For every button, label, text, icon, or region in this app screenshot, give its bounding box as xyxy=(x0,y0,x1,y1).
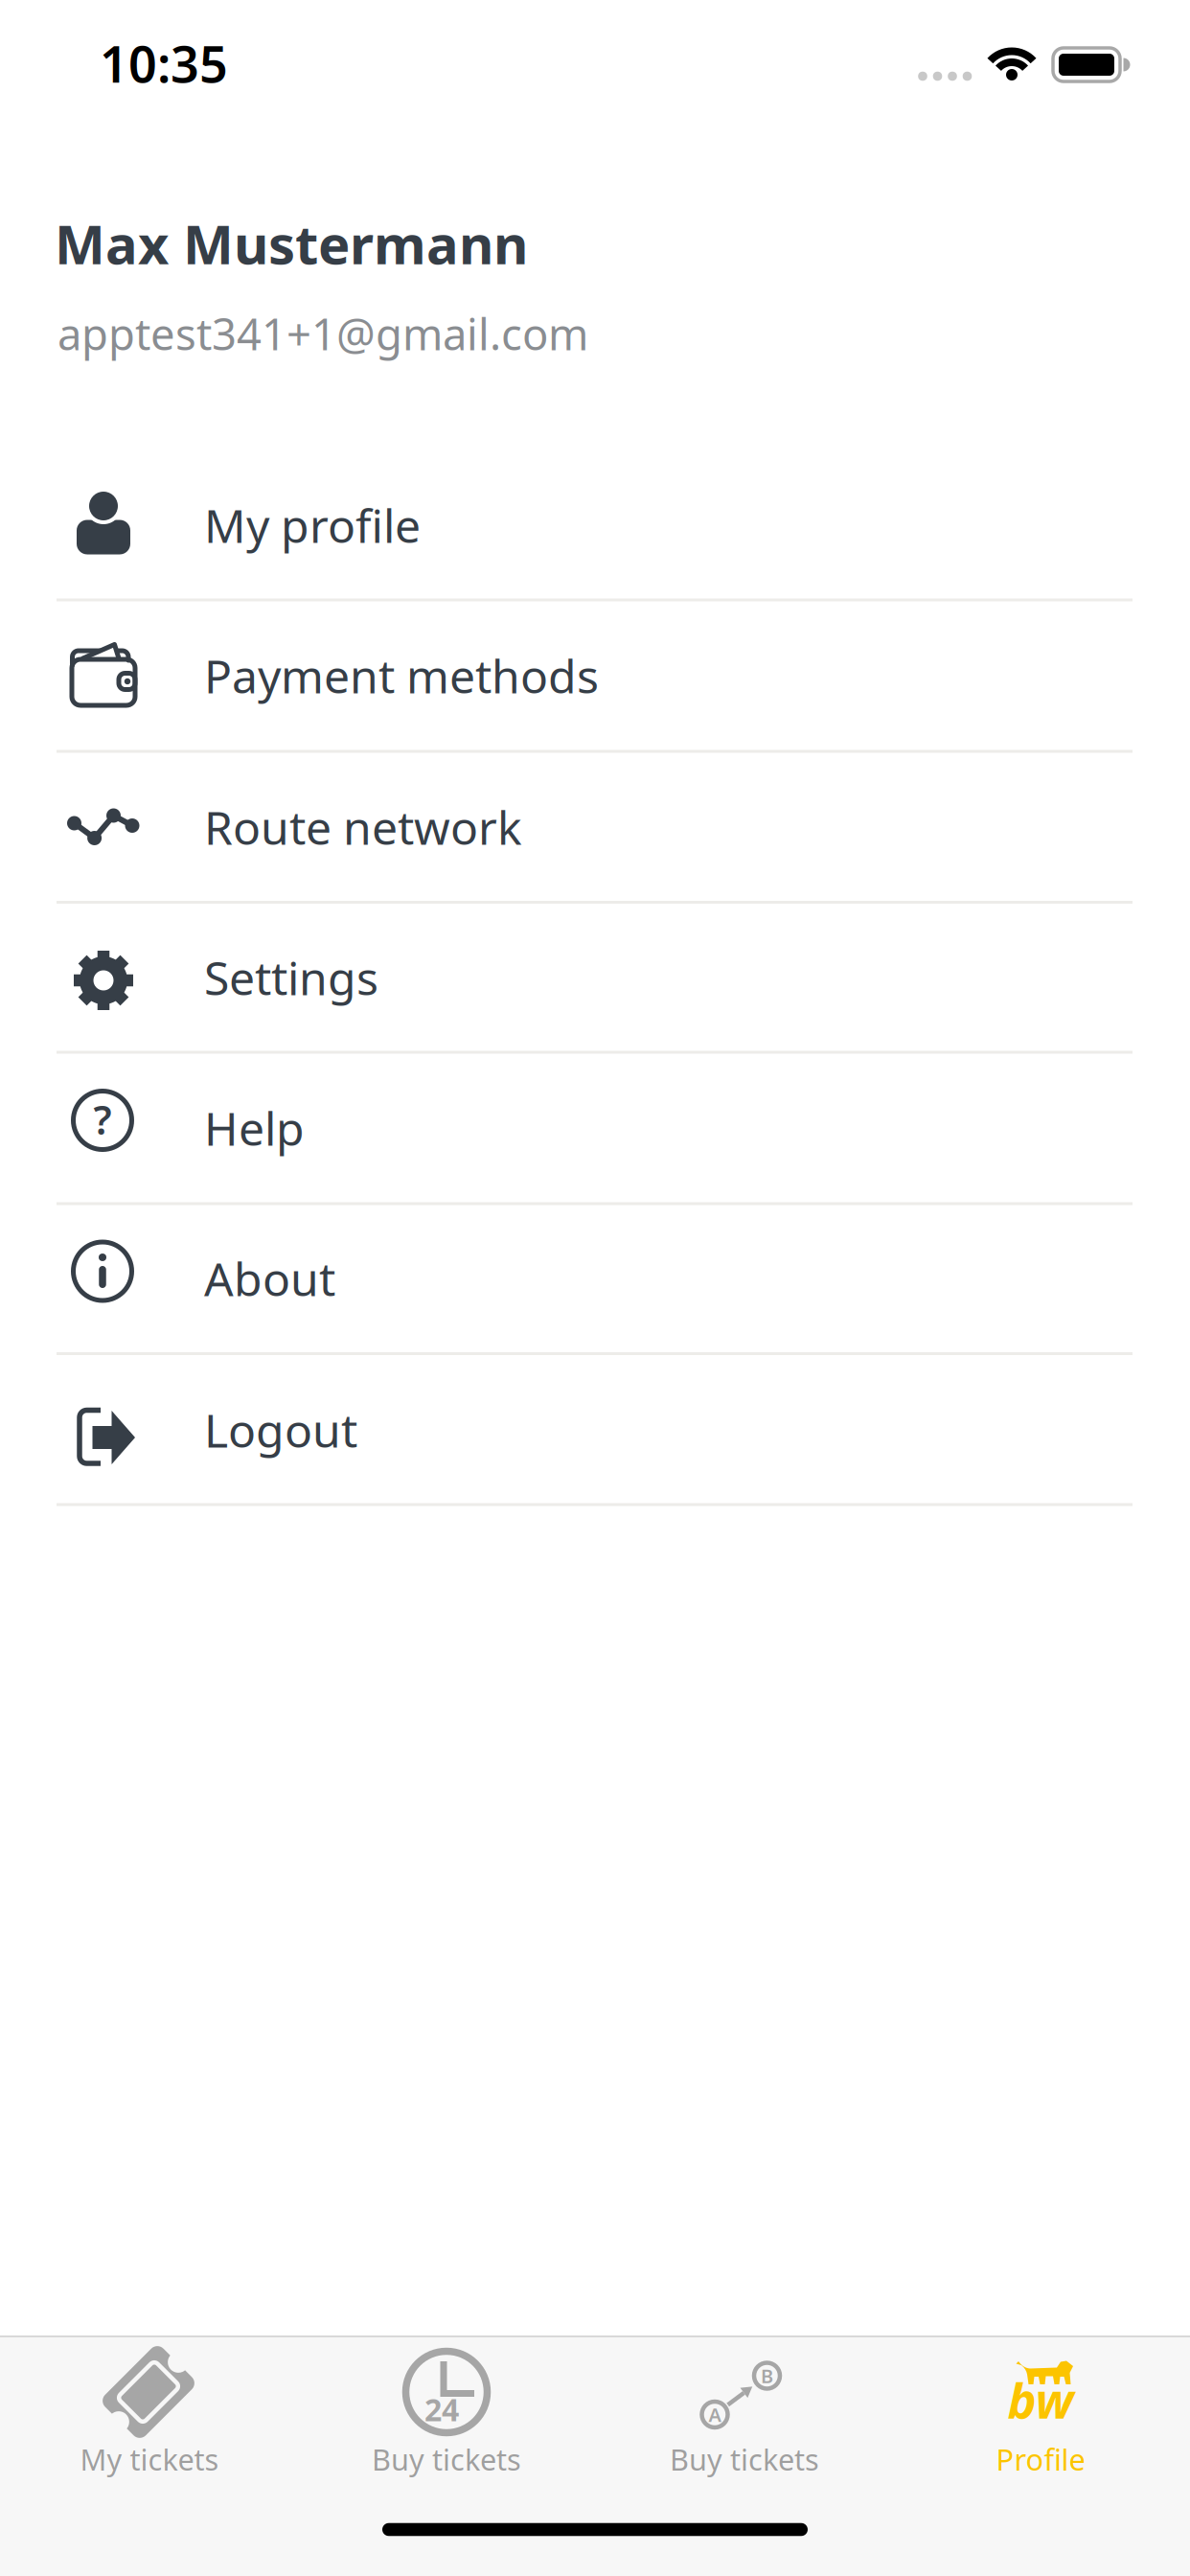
staticText: Payment methods xyxy=(204,645,599,706)
staticText: 24 xyxy=(424,2389,459,2430)
staticText: My tickets xyxy=(80,2440,219,2479)
staticText: Buy tickets xyxy=(372,2440,521,2479)
staticText: 10:35 xyxy=(100,30,228,96)
staticText: About xyxy=(204,1248,335,1309)
staticText: ? xyxy=(93,1093,112,1146)
staticText: Settings xyxy=(204,947,378,1008)
staticText: bw xyxy=(1007,2367,1074,2432)
staticText: A xyxy=(709,2402,721,2427)
staticText: Route network xyxy=(204,796,522,858)
staticText: Logout xyxy=(204,1399,357,1460)
staticText: My profile xyxy=(204,495,421,556)
staticText: B xyxy=(761,2363,773,2388)
staticText: Help xyxy=(204,1097,305,1158)
staticText: Buy tickets xyxy=(670,2440,819,2479)
staticText: apptest341+1@gmail.com xyxy=(57,305,588,362)
staticText: Max Mustermann xyxy=(55,208,528,279)
staticText: Profile xyxy=(996,2440,1085,2479)
